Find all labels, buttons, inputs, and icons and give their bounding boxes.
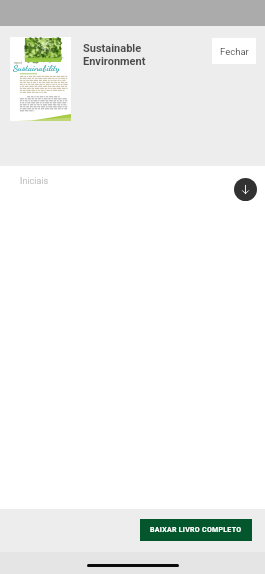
staticText: Fechar: [220, 46, 249, 57]
button[interactable]: Fechar: [212, 38, 256, 64]
staticText: BAIXAR LIVRO COMPLETO: [150, 526, 242, 534]
button[interactable]: BAIXAR LIVRO COMPLETO: [140, 519, 252, 541]
staticText: report: [14, 61, 23, 65]
button[interactable]: Baixar: [234, 178, 257, 201]
staticText: Iniciais: [20, 176, 49, 187]
staticText: Sustainability: [13, 63, 60, 74]
staticText: Sustainable Environment: [83, 42, 146, 68]
